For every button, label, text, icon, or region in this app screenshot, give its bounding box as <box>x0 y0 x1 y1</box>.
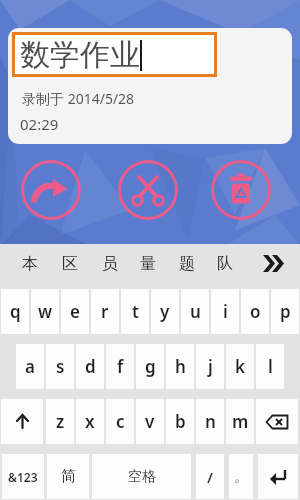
button[interactable]: t <box>121 289 149 334</box>
button[interactable]: 本 <box>16 250 44 278</box>
staticText: o <box>250 300 261 323</box>
button[interactable]: 员 <box>96 250 124 278</box>
button[interactable]: 题 <box>173 250 201 278</box>
button[interactable]: 。 <box>229 454 253 499</box>
button[interactable]: &123 <box>2 454 44 499</box>
button[interactable]: f <box>106 344 134 389</box>
button[interactable]: z <box>46 399 74 444</box>
button[interactable]: e <box>61 289 89 334</box>
button[interactable]: p <box>271 289 299 334</box>
staticText: p <box>280 300 291 323</box>
staticText: 本 <box>22 254 38 274</box>
staticText: l <box>268 355 273 378</box>
staticText: 。 <box>234 468 248 486</box>
button[interactable] <box>258 454 298 499</box>
button[interactable]: u <box>181 289 209 334</box>
button[interactable]: x <box>76 399 104 444</box>
staticText: 空格 <box>128 468 156 486</box>
staticText: 量 <box>140 254 156 274</box>
button[interactable]: s <box>46 344 74 389</box>
staticText: &123 <box>8 469 38 485</box>
staticText: c <box>116 410 125 433</box>
staticText: n <box>205 410 216 433</box>
staticText: / <box>207 467 213 487</box>
staticText: g <box>145 355 156 378</box>
button[interactable]: q <box>1 289 29 334</box>
button[interactable]: / <box>196 454 224 499</box>
button[interactable]: g <box>136 344 164 389</box>
button[interactable]: 队 <box>211 250 239 278</box>
button[interactable] <box>21 160 81 220</box>
staticText: i <box>223 300 228 323</box>
button[interactable] <box>118 160 178 220</box>
staticText: s <box>56 355 65 378</box>
staticText: 02:29 <box>20 114 59 134</box>
button[interactable]: o <box>241 289 269 334</box>
staticText: h <box>175 355 186 378</box>
staticText: 录制于 2014/5/28 <box>22 89 135 108</box>
staticText: j <box>208 355 213 378</box>
staticText: f <box>117 355 124 378</box>
staticText: w <box>38 300 53 323</box>
staticText: k <box>235 355 245 378</box>
staticText: t <box>132 300 139 323</box>
button[interactable] <box>211 160 271 220</box>
button[interactable]: k <box>226 344 254 389</box>
button[interactable]: 区 <box>56 250 84 278</box>
button[interactable]: h <box>166 344 194 389</box>
staticText: 题 <box>179 254 195 274</box>
button[interactable]: 简 <box>47 454 89 499</box>
button[interactable]: m <box>226 399 254 444</box>
staticText: y <box>160 300 170 323</box>
staticText: r <box>101 300 109 323</box>
staticText: v <box>145 410 155 433</box>
staticText: 员 <box>102 254 118 274</box>
button[interactable]: b <box>166 399 194 444</box>
staticText: z <box>56 410 65 433</box>
staticText: 区 <box>62 254 78 274</box>
staticText: e <box>70 300 80 323</box>
button[interactable]: d <box>76 344 104 389</box>
staticText: x <box>85 410 95 433</box>
staticText: q <box>10 300 21 323</box>
button[interactable]: r <box>91 289 119 334</box>
staticText: a <box>25 355 35 378</box>
button[interactable]: j <box>196 344 224 389</box>
staticText: 队 <box>217 254 233 274</box>
staticText: 数学作业 <box>20 36 140 74</box>
button[interactable]: y <box>151 289 179 334</box>
button[interactable]: n <box>196 399 224 444</box>
staticText: m <box>232 410 249 433</box>
staticText: b <box>175 410 186 433</box>
button[interactable] <box>1 399 43 444</box>
button[interactable] <box>256 399 298 444</box>
button[interactable] <box>256 246 290 280</box>
button[interactable]: a <box>16 344 44 389</box>
staticText: d <box>85 355 96 378</box>
button[interactable]: i <box>211 289 239 334</box>
button[interactable]: 量 <box>134 250 162 278</box>
button[interactable]: w <box>31 289 59 334</box>
staticText: 简 <box>61 467 76 486</box>
button[interactable]: l <box>256 344 284 389</box>
button[interactable]: v <box>136 399 164 444</box>
button[interactable]: c <box>106 399 134 444</box>
button[interactable]: 空格 <box>92 454 191 499</box>
button[interactable]: 数学作业 <box>12 32 217 77</box>
staticText: u <box>190 300 201 323</box>
